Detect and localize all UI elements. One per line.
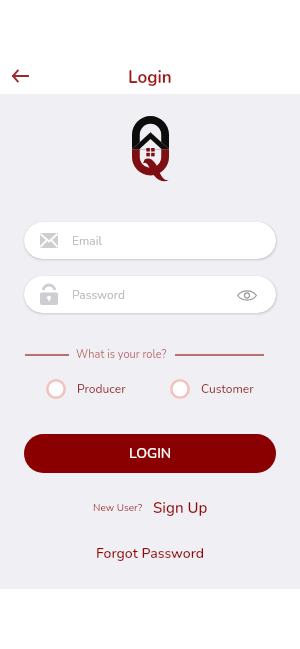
staticText: Customer bbox=[201, 381, 254, 397]
staticText: Producer bbox=[77, 381, 126, 397]
staticText: New User? bbox=[93, 501, 143, 515]
button[interactable]: Producer bbox=[46, 379, 126, 399]
button[interactable]: Show password bbox=[234, 284, 260, 306]
staticText: Sign Up bbox=[153, 498, 208, 518]
staticText: Login bbox=[128, 66, 172, 89]
staticText: Forgot Password bbox=[96, 544, 205, 563]
button[interactable]: Forgot Password bbox=[96, 544, 205, 563]
staticText: LOGIN bbox=[129, 444, 172, 463]
staticText: Email bbox=[72, 233, 102, 249]
button[interactable]: Email bbox=[24, 222, 276, 259]
staticText: What is your role? bbox=[76, 347, 167, 362]
button[interactable]: LOGIN bbox=[24, 434, 276, 473]
staticText: Password bbox=[72, 287, 125, 303]
button[interactable]: Customer bbox=[170, 379, 254, 399]
button[interactable]: Password bbox=[24, 276, 276, 313]
button[interactable]: Back bbox=[2, 58, 38, 93]
button[interactable]: Sign Up bbox=[153, 498, 208, 518]
